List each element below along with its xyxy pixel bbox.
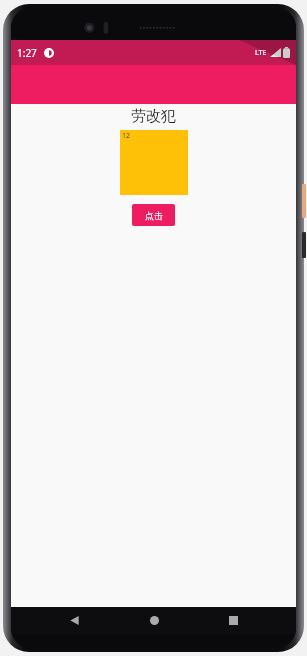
button[interactable]: Recent apps bbox=[216, 607, 250, 634]
button[interactable]: Back bbox=[57, 607, 91, 634]
staticText: 12 bbox=[122, 131, 131, 141]
button[interactable]: 点击 bbox=[132, 204, 175, 226]
staticText: LTE bbox=[255, 48, 267, 58]
staticText: 点击 bbox=[145, 210, 163, 221]
button[interactable]: 12 bbox=[120, 130, 188, 195]
button[interactable]: Home bbox=[137, 607, 171, 634]
staticText: 劳改犯 bbox=[131, 107, 176, 126]
staticText: 1:27 bbox=[17, 46, 37, 60]
